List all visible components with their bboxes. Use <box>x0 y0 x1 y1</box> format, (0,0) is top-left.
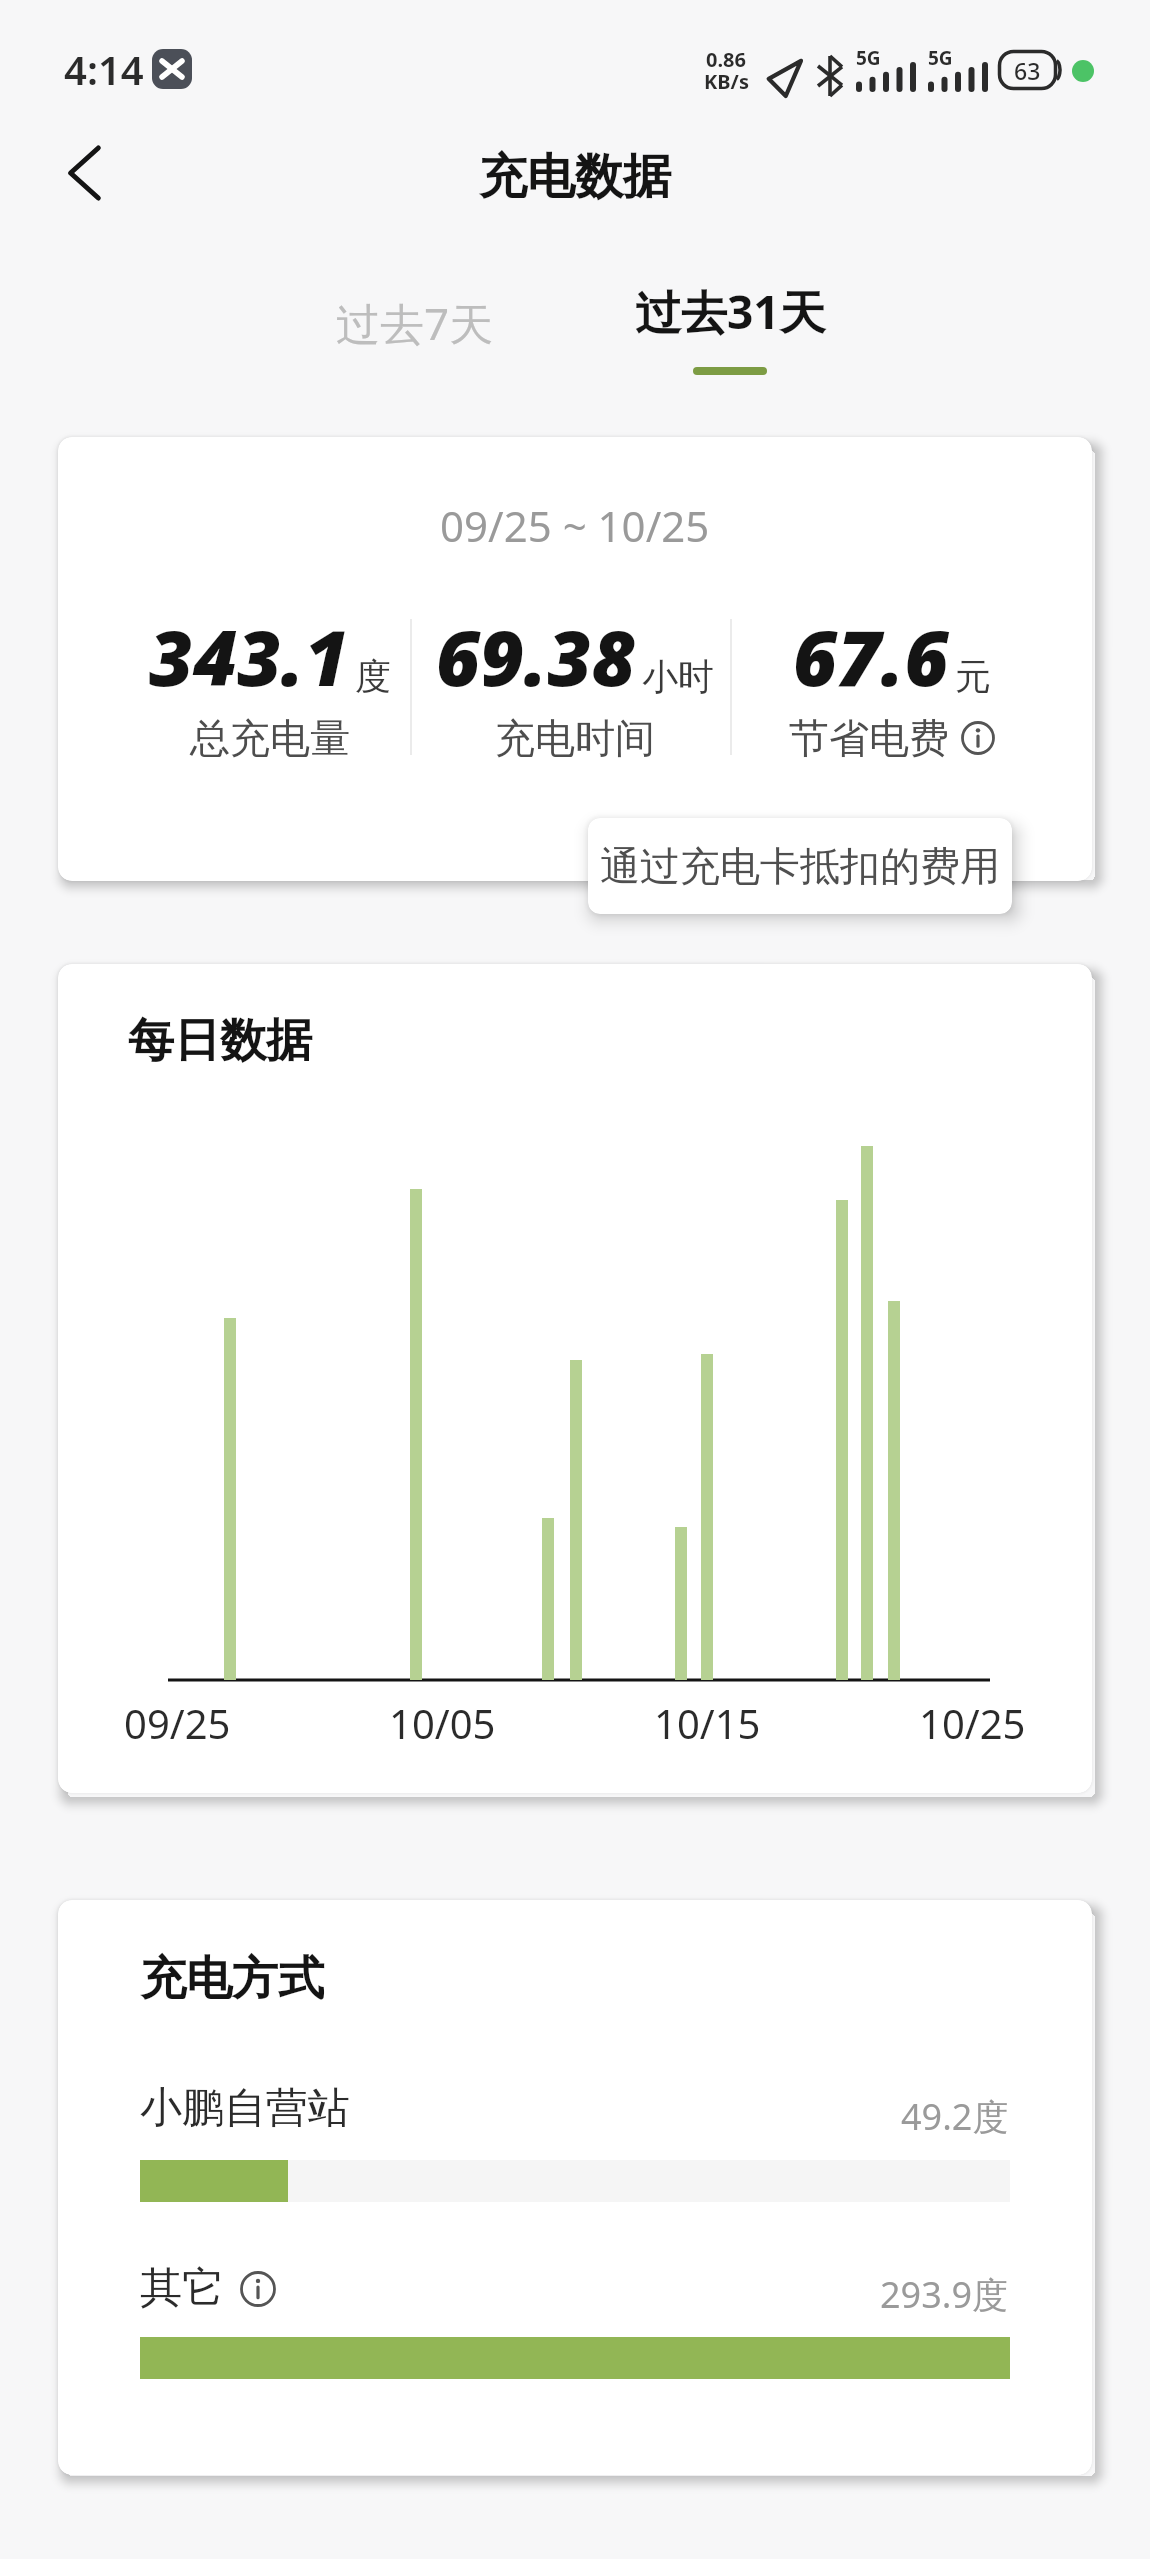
button[interactable]: 通过充电卡抵扣的费用 <box>588 818 1012 914</box>
staticText: 69.38 <box>436 605 636 709</box>
staticText: 343.1 <box>149 605 349 709</box>
staticText: 67.6 <box>793 605 949 709</box>
staticText: 节省电费 <box>789 713 949 763</box>
staticText: 过去31天 <box>635 280 826 343</box>
staticText: 过去7天 <box>336 293 494 353</box>
staticText: 10/15 <box>654 1696 761 1750</box>
staticText: 通过充电卡抵扣的费用 <box>600 841 1000 891</box>
button[interactable] <box>66 146 104 200</box>
button[interactable]: 过去7天 <box>300 280 530 390</box>
staticText: 5G <box>928 45 953 71</box>
staticText: 总充电量 <box>190 713 350 763</box>
staticText: 小时 <box>642 654 714 699</box>
staticText: 元 <box>955 654 991 699</box>
staticText: 0.86 <box>706 46 746 73</box>
button[interactable] <box>961 721 995 755</box>
staticText: 其它 <box>140 2262 224 2315</box>
staticText: 10/05 <box>389 1696 496 1750</box>
staticText: 63 <box>1014 55 1041 86</box>
staticText: 小鹏自营站 <box>140 2082 350 2135</box>
staticText: 49.2度 <box>901 2092 1009 2141</box>
staticText: 度 <box>355 654 391 699</box>
staticText: 293.9度 <box>880 2270 1009 2319</box>
staticText: KB/s <box>704 68 749 95</box>
staticText: 充电方式 <box>140 1950 324 2008</box>
staticText: 09/25 ~ 10/25 <box>440 497 710 554</box>
staticText: 5G <box>856 45 881 71</box>
staticText: 09/25 <box>124 1696 231 1750</box>
button[interactable]: 过去31天 <box>615 280 845 390</box>
staticText: 4:14 <box>64 42 144 96</box>
staticText: 10/25 <box>919 1696 1026 1750</box>
button[interactable] <box>240 2271 276 2307</box>
staticText: 充电数据 <box>479 147 671 207</box>
button[interactable] <box>140 2160 1010 2202</box>
staticText: 充电时间 <box>495 713 655 763</box>
staticText: 每日数据 <box>128 1012 312 1070</box>
